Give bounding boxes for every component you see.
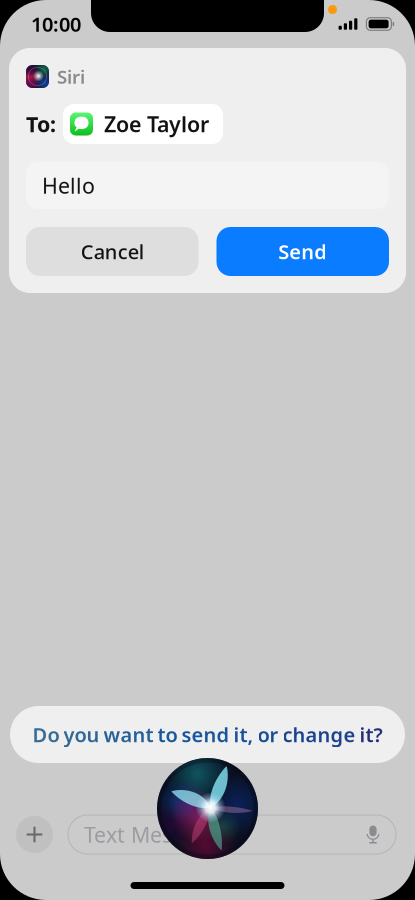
staticText: 10:00 [31,11,81,37]
staticText: Text Message [84,820,219,849]
staticText: change [282,721,355,748]
button[interactable]: Send [216,227,389,276]
staticText: Zoe Taylor [104,110,209,138]
staticText: Send [278,238,327,265]
staticText: or [257,721,278,748]
staticText: Do [32,721,59,748]
staticText: Hello [42,171,95,200]
staticText: it, [233,721,253,748]
staticText: to [157,721,177,748]
staticText: it? [359,721,382,748]
staticText: want [103,721,153,748]
button[interactable]: Add attachment [16,816,53,853]
staticText: you [63,721,99,748]
button[interactable]: Cancel [26,227,198,276]
staticText: send [181,721,229,748]
button[interactable]: Text Message [68,815,396,854]
staticText: Siri [57,64,85,89]
staticText: To: [26,110,56,138]
staticText: Cancel [81,238,144,265]
